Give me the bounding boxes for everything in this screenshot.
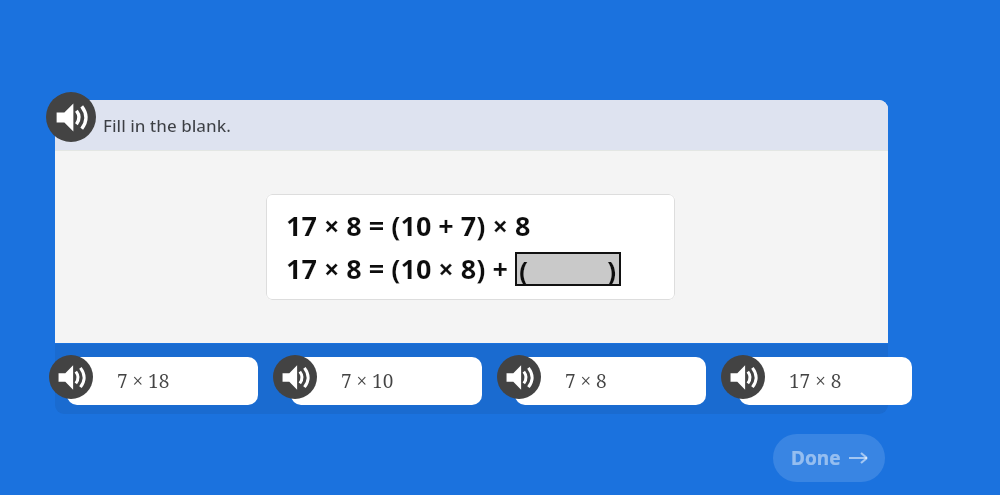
- staticText: 17 × 8 = (10 × 8) +: [286, 250, 515, 287]
- button[interactable]: Play audio: 17 × 8: [721, 355, 765, 399]
- staticText: 7 × 8: [565, 368, 607, 394]
- button[interactable]: 17 × 8: [739, 357, 912, 405]
- button[interactable]: 7 × 10: [291, 357, 482, 405]
- staticText: 7 × 10: [341, 368, 394, 394]
- button[interactable]: Done: [773, 434, 885, 482]
- staticText: 17 × 8 = (10 + 7) × 8: [286, 207, 531, 244]
- button[interactable]: (: [515, 252, 621, 286]
- staticText: Fill in the blank.: [103, 114, 231, 137]
- button[interactable]: Play audio: 7 × 8: [497, 355, 541, 399]
- button[interactable]: 7 × 8: [515, 357, 706, 405]
- staticText: ): [607, 252, 617, 286]
- button[interactable]: Play audio: 7 × 10: [273, 355, 317, 399]
- button[interactable]: Play audio: 7 × 18: [49, 355, 93, 399]
- button[interactable]: 7 × 18: [67, 357, 258, 405]
- button[interactable]: Play question audio: [46, 92, 96, 142]
- staticText: 7 × 18: [117, 368, 170, 394]
- staticText: Done: [791, 445, 841, 471]
- staticText: (: [519, 252, 529, 286]
- staticText: 17 × 8: [789, 368, 842, 394]
